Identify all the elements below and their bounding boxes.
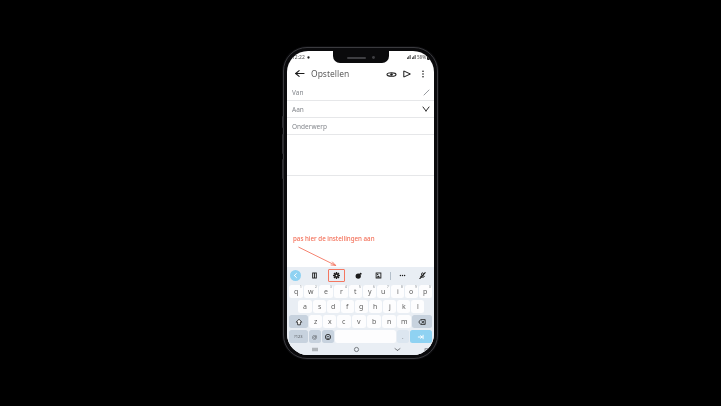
staticText: w	[308, 287, 314, 297]
staticText: f	[346, 302, 349, 312]
staticText: 9	[415, 285, 417, 289]
button[interactable]: Onderwerp	[287, 118, 434, 134]
button[interactable]: ?123	[289, 330, 308, 343]
button[interactable]: g	[355, 300, 368, 313]
staticText: v	[357, 317, 361, 327]
staticText: 4	[345, 285, 347, 289]
button[interactable]: At sign	[309, 330, 321, 343]
button[interactable]: Emoji	[352, 269, 365, 282]
staticText: c	[342, 317, 346, 327]
staticText: 8	[401, 285, 403, 289]
button[interactable]: 3	[319, 285, 333, 298]
button[interactable]: v	[352, 315, 366, 328]
staticText: l	[417, 302, 419, 312]
button[interactable]: Send	[400, 67, 414, 81]
button[interactable]: Recents	[309, 344, 321, 355]
staticText: k	[402, 302, 406, 312]
button[interactable]: Aan	[287, 101, 434, 117]
button[interactable]: Back	[292, 66, 307, 81]
staticText: 12:22	[292, 54, 305, 61]
staticText: Van	[292, 88, 304, 97]
button[interactable]: 7	[377, 285, 390, 298]
staticText: 58%	[417, 54, 426, 60]
staticText: h	[373, 302, 378, 312]
button[interactable]: 9	[405, 285, 418, 298]
button[interactable]: Emoji	[322, 330, 334, 343]
button[interactable]: x	[323, 315, 336, 328]
staticText: m	[401, 317, 408, 327]
staticText: 0	[429, 285, 431, 289]
staticText: ?123	[294, 334, 303, 339]
button[interactable]: n	[382, 315, 396, 328]
button[interactable]: Settings	[328, 269, 345, 282]
staticText: 6	[373, 285, 375, 289]
staticText: t	[354, 287, 357, 297]
button[interactable]: .	[397, 330, 409, 343]
button[interactable]: 8	[391, 285, 404, 298]
button[interactable]: Hide keyboard	[422, 345, 432, 355]
staticText: u	[381, 287, 386, 297]
staticText: 2	[315, 285, 317, 289]
staticText: pas hier de instellingen aan	[293, 234, 375, 242]
staticText: Opstellen	[311, 68, 350, 80]
staticText: i	[397, 287, 399, 297]
staticText: a	[303, 302, 307, 312]
button[interactable]: m	[397, 315, 411, 328]
button[interactable]: 2	[304, 285, 318, 298]
staticText: r	[340, 287, 343, 297]
staticText: o	[409, 287, 414, 297]
staticText: 5	[359, 285, 361, 289]
button[interactable]: Voice input off	[416, 269, 429, 282]
button[interactable]: l	[411, 300, 424, 313]
button[interactable]: 5	[349, 285, 362, 298]
staticText: d	[331, 302, 336, 312]
staticText: 7	[387, 285, 389, 289]
staticText: @	[312, 333, 318, 341]
button[interactable]: 4	[334, 285, 348, 298]
button[interactable]: Format text	[308, 269, 321, 282]
button[interactable]: More options	[416, 67, 429, 80]
staticText: s	[318, 302, 322, 312]
button[interactable]: z	[309, 315, 322, 328]
staticText: n	[387, 317, 392, 327]
button[interactable]: b	[367, 315, 381, 328]
button[interactable]: Shift	[289, 315, 308, 328]
button[interactable]: a	[298, 300, 312, 313]
button[interactable]: Next field	[410, 330, 432, 343]
button[interactable]: More	[396, 269, 409, 282]
button[interactable]: h	[369, 300, 382, 313]
staticText: 3	[330, 285, 332, 289]
button[interactable]: 6	[363, 285, 376, 298]
button[interactable]: f	[341, 300, 354, 313]
button[interactable]: d	[327, 300, 340, 313]
button[interactable]: Van	[287, 84, 434, 100]
staticText: b	[372, 317, 377, 327]
button[interactable]: k	[397, 300, 410, 313]
button[interactable]: 1	[289, 285, 303, 298]
staticText: x	[328, 317, 332, 327]
button[interactable]: s	[313, 300, 326, 313]
button[interactable]: c	[337, 315, 351, 328]
button[interactable]: Attach	[384, 67, 398, 81]
staticText: .	[402, 333, 404, 341]
button[interactable]: Insert image	[372, 269, 385, 282]
staticText: p	[423, 287, 428, 297]
staticText: Aan	[292, 105, 304, 114]
button[interactable]: Home	[350, 344, 362, 355]
staticText: z	[314, 317, 318, 327]
button[interactable]: 0	[419, 285, 432, 298]
staticText: q	[294, 287, 299, 297]
button[interactable]: Back	[391, 344, 403, 355]
staticText: Onderwerp	[292, 122, 327, 131]
staticText: j	[389, 302, 391, 312]
staticText: y	[368, 287, 372, 297]
staticText: 1	[300, 285, 302, 289]
button[interactable]: Backspace	[412, 315, 432, 328]
staticText: e	[324, 287, 328, 297]
staticText: g	[359, 302, 364, 312]
button[interactable]: Collapse toolbar	[290, 270, 301, 281]
button[interactable]: j	[383, 300, 396, 313]
